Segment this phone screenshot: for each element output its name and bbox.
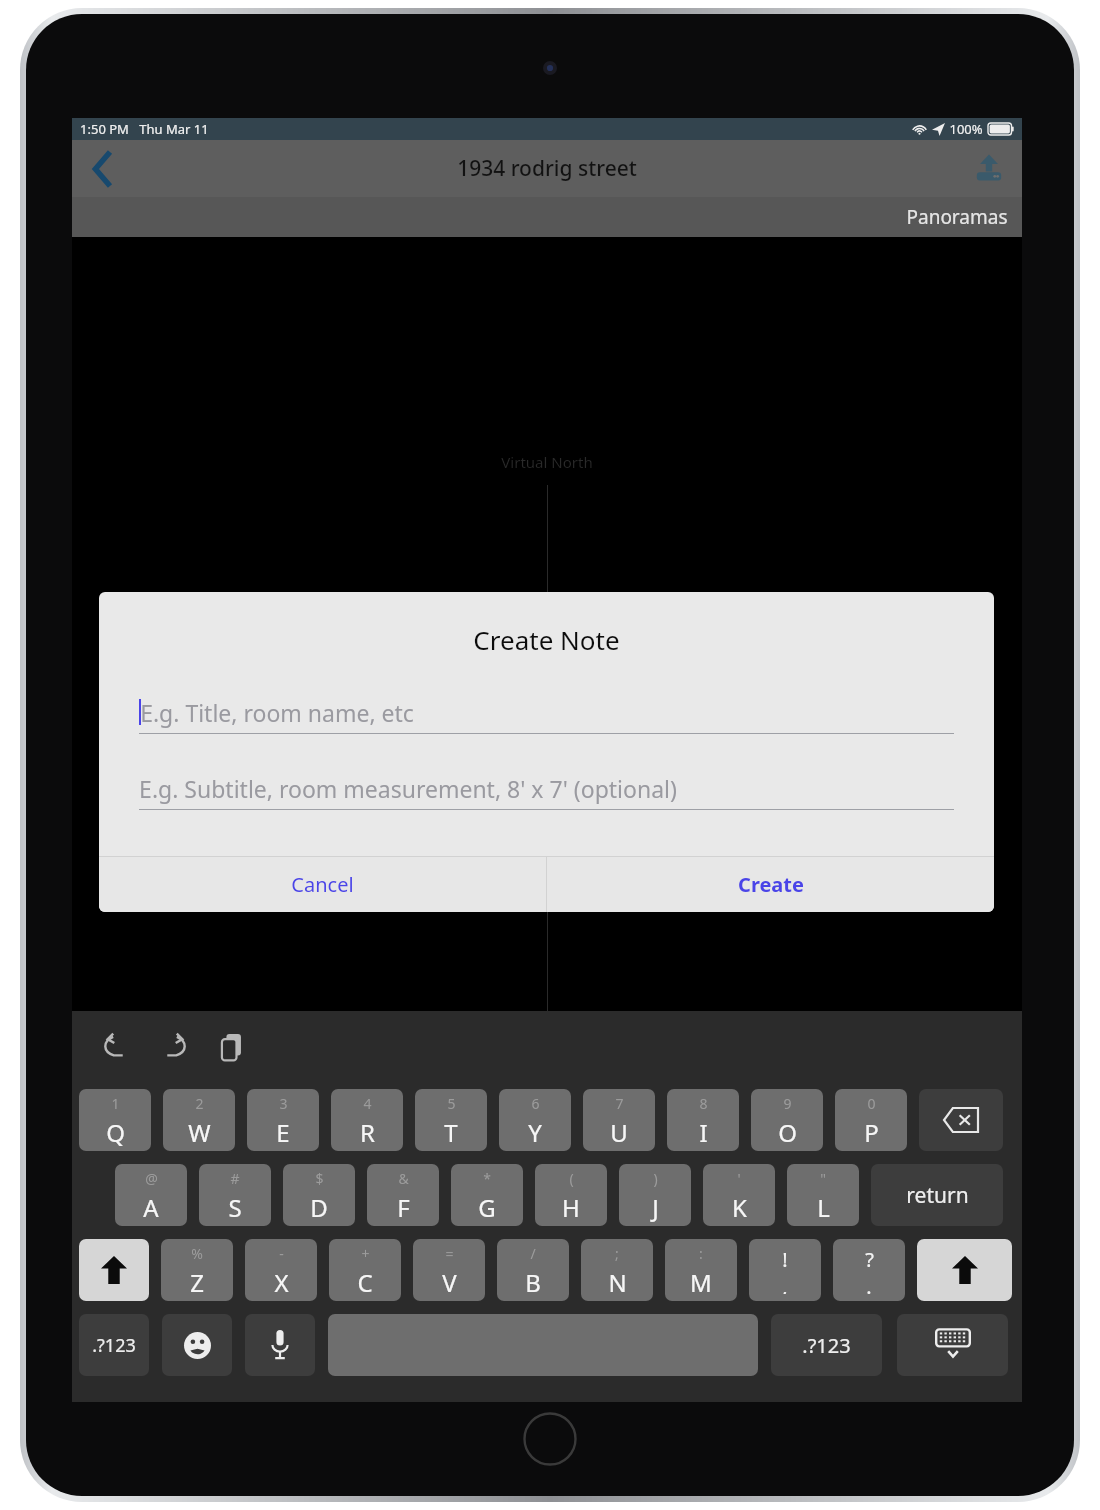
button[interactable]: Emoji [162, 1314, 232, 1376]
button[interactable]: " [787, 1164, 859, 1226]
button[interactable]: & [367, 1164, 439, 1226]
staticText: L [817, 1191, 830, 1224]
button[interactable]: E.g. Subtitle, room measurement, 8' x 7'… [139, 767, 954, 809]
button[interactable]: # [199, 1164, 271, 1226]
button[interactable]: 4 [331, 1089, 403, 1151]
staticText: 1 [111, 1094, 120, 1113]
button[interactable]: Undo [98, 1029, 134, 1065]
button[interactable]: 6 [499, 1089, 571, 1151]
staticText: return [906, 1181, 969, 1210]
button[interactable]: 0 [835, 1089, 907, 1151]
staticText: E.g. Title, room name, etc [140, 697, 414, 728]
button[interactable]: E.g. Title, room name, etc [139, 691, 954, 733]
staticText: D [310, 1191, 328, 1224]
button[interactable]: : [665, 1239, 737, 1301]
staticText: S [228, 1191, 242, 1224]
button[interactable]: .?123 [771, 1314, 882, 1376]
staticText: .?123 [802, 1332, 851, 1359]
button[interactable]: 2 [163, 1089, 235, 1151]
staticText: / [530, 1244, 536, 1263]
staticText: - [279, 1244, 284, 1263]
button[interactable]: = [413, 1239, 485, 1301]
button[interactable]: * [451, 1164, 523, 1226]
staticText: E [276, 1116, 290, 1149]
staticText: ! [782, 1246, 788, 1273]
staticText: K [732, 1191, 747, 1224]
staticText: . [866, 1273, 872, 1294]
staticText: ; [615, 1244, 619, 1263]
button[interactable]: ' [703, 1164, 775, 1226]
button[interactable]: 5 [415, 1089, 487, 1151]
button[interactable]: 7 [583, 1089, 655, 1151]
staticText: Virtual North [501, 452, 593, 472]
button[interactable]: 1 [79, 1089, 151, 1151]
button[interactable]: Share [956, 140, 1022, 197]
staticText: R [360, 1116, 375, 1149]
staticText: 100% [949, 120, 983, 138]
staticText: P [864, 1116, 879, 1149]
button[interactable]: 8 [667, 1089, 739, 1151]
staticText: @ [145, 1169, 158, 1188]
staticText: 1934 rodrig street [457, 154, 637, 183]
button[interactable]: Create [547, 857, 994, 912]
button[interactable]: - [245, 1239, 317, 1301]
staticText: 9 [783, 1094, 792, 1113]
button[interactable]: Paste [214, 1029, 250, 1065]
button[interactable]: ) [619, 1164, 691, 1226]
staticText: A [143, 1191, 159, 1224]
staticText: 8 [699, 1094, 708, 1113]
button[interactable]: 3 [247, 1089, 319, 1151]
button[interactable]: Dictation [245, 1314, 315, 1376]
staticText: 2 [195, 1094, 204, 1113]
button[interactable]: @ [115, 1164, 187, 1226]
staticText: ( [569, 1169, 574, 1188]
button[interactable]: ? [833, 1239, 905, 1301]
staticText: 1:50 PM [80, 120, 129, 138]
button[interactable]: .?123 [79, 1314, 149, 1376]
staticText: Thu Mar 11 [139, 120, 209, 138]
button[interactable]: Cancel [99, 857, 546, 912]
button[interactable]: Panoramas [892, 198, 1022, 236]
staticText: C [357, 1266, 373, 1299]
staticText: Z [190, 1266, 204, 1299]
staticText: # [230, 1169, 240, 1188]
staticText: + [361, 1244, 370, 1263]
staticText: B [525, 1266, 541, 1299]
button[interactable]: / [497, 1239, 569, 1301]
button[interactable]: ( [535, 1164, 607, 1226]
button[interactable]: $ [283, 1164, 355, 1226]
staticText: : [699, 1244, 703, 1263]
button[interactable]: % [161, 1239, 233, 1301]
button[interactable]: Hide keyboard [897, 1314, 1008, 1376]
staticText: .?123 [92, 1333, 136, 1358]
button[interactable]: ! [749, 1239, 821, 1301]
staticText: J [652, 1191, 659, 1224]
staticText: X [274, 1266, 289, 1299]
staticText: V [442, 1266, 457, 1299]
button[interactable]: Back [72, 140, 134, 197]
staticText: % [191, 1244, 203, 1263]
staticText: M [690, 1266, 712, 1299]
staticText: & [398, 1169, 409, 1188]
staticText: ) [653, 1169, 658, 1188]
staticText: , [782, 1273, 788, 1294]
staticText: U [610, 1116, 628, 1149]
button[interactable]: 9 [751, 1089, 823, 1151]
button[interactable]: Shift [79, 1239, 149, 1301]
button[interactable]: + [329, 1239, 401, 1301]
staticText: " [820, 1169, 826, 1188]
staticText: 6 [531, 1094, 540, 1113]
staticText: Q [106, 1116, 125, 1149]
button[interactable]: Backspace [919, 1089, 1003, 1151]
button[interactable]: Redo [156, 1029, 192, 1065]
staticText: 7 [615, 1094, 624, 1113]
staticText: 3 [279, 1094, 288, 1113]
button[interactable]: return [871, 1164, 1003, 1226]
staticText: O [778, 1116, 797, 1149]
button[interactable]: Shift [917, 1239, 1012, 1301]
staticText: Y [528, 1116, 542, 1149]
staticText: W [188, 1116, 211, 1149]
staticText: T [444, 1116, 458, 1149]
button[interactable]: ; [581, 1239, 653, 1301]
